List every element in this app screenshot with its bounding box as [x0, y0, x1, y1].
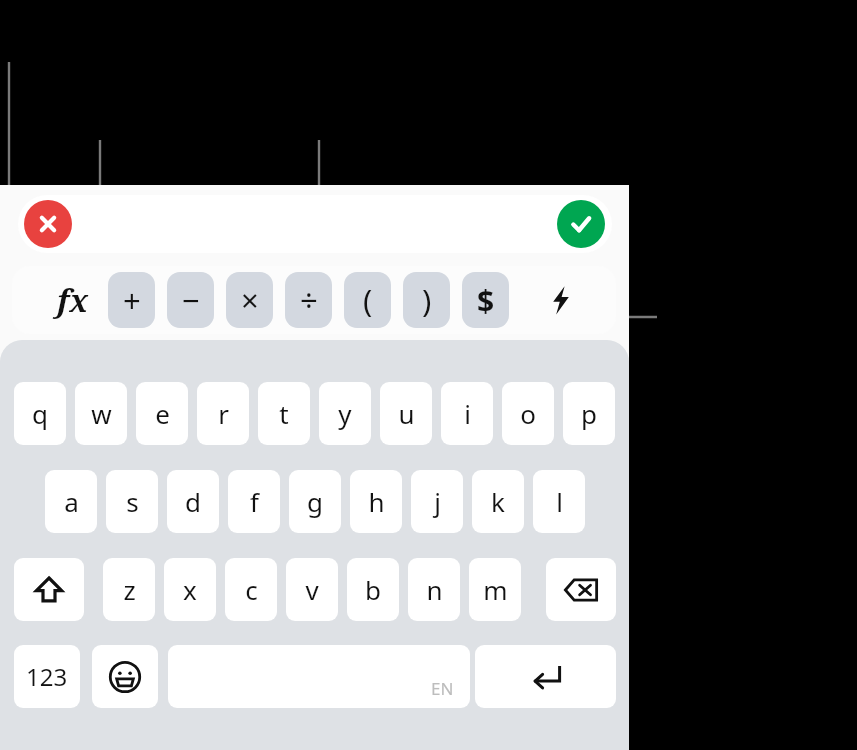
- button[interactable]: ): [403, 272, 450, 328]
- staticText: 123: [26, 660, 68, 693]
- button[interactable]: Space: [168, 645, 470, 708]
- staticText: b: [365, 572, 381, 607]
- staticText: p: [581, 396, 597, 431]
- button[interactable]: r: [197, 382, 249, 445]
- button[interactable]: x: [164, 558, 216, 621]
- button[interactable]: t: [258, 382, 310, 445]
- staticText: o: [520, 396, 536, 431]
- button[interactable]: +: [108, 272, 155, 328]
- button[interactable]: z: [103, 558, 155, 621]
- button[interactable]: u: [380, 382, 432, 445]
- staticText: d: [185, 484, 201, 519]
- button[interactable]: w: [75, 382, 127, 445]
- staticText: k: [491, 484, 505, 519]
- staticText: +: [123, 279, 141, 321]
- staticText: c: [245, 572, 258, 607]
- staticText: EN: [431, 677, 454, 700]
- staticText: f: [250, 484, 259, 519]
- button[interactable]: y: [319, 382, 371, 445]
- staticText: q: [32, 396, 48, 431]
- staticText: −: [182, 279, 200, 321]
- button[interactable]: a: [45, 470, 97, 533]
- staticText: ): [422, 279, 432, 321]
- staticText: y: [338, 396, 352, 431]
- button[interactable]: Accept: [557, 200, 605, 248]
- button[interactable]: (: [344, 272, 391, 328]
- button[interactable]: Emoji: [92, 645, 158, 708]
- staticText: n: [426, 572, 443, 607]
- button[interactable]: 123: [14, 645, 80, 708]
- button[interactable]: v: [286, 558, 338, 621]
- button[interactable]: Shift: [14, 558, 84, 621]
- button[interactable]: s: [106, 470, 158, 533]
- button[interactable]: l: [533, 470, 585, 533]
- button[interactable]: j: [411, 470, 463, 533]
- button[interactable]: q: [14, 382, 66, 445]
- staticText: a: [64, 484, 79, 519]
- button[interactable]: c: [225, 558, 277, 621]
- button[interactable]: o: [502, 382, 554, 445]
- staticText: j: [434, 484, 441, 519]
- staticText: ×: [241, 279, 259, 321]
- staticText: v: [305, 572, 319, 607]
- button[interactable]: Quick actions: [538, 277, 584, 323]
- button[interactable]: g: [289, 470, 341, 533]
- button[interactable]: m: [469, 558, 521, 621]
- button[interactable]: d: [167, 470, 219, 533]
- staticText: z: [123, 572, 136, 607]
- button[interactable]: b: [347, 558, 399, 621]
- button[interactable]: h: [350, 470, 402, 533]
- button[interactable]: Functions: [48, 275, 98, 325]
- staticText: m: [483, 572, 508, 607]
- button[interactable]: $: [462, 272, 509, 328]
- staticText: g: [307, 484, 323, 519]
- staticText: l: [556, 484, 563, 519]
- staticText: ÷: [300, 279, 318, 321]
- button[interactable]: i: [441, 382, 493, 445]
- button[interactable]: −: [167, 272, 214, 328]
- staticText: x: [183, 572, 197, 607]
- staticText: $: [477, 280, 495, 321]
- staticText: r: [218, 396, 229, 431]
- staticText: (: [363, 279, 373, 321]
- button[interactable]: Backspace: [546, 558, 616, 621]
- staticText: u: [398, 396, 415, 431]
- button[interactable]: n: [408, 558, 460, 621]
- staticText: s: [126, 484, 139, 519]
- staticText: fx: [57, 279, 89, 321]
- button[interactable]: ×: [226, 272, 273, 328]
- button[interactable]: Enter: [475, 645, 616, 708]
- button[interactable]: ÷: [285, 272, 332, 328]
- button[interactable]: f: [228, 470, 280, 533]
- button[interactable]: Cancel: [24, 200, 72, 248]
- staticText: t: [279, 396, 289, 431]
- staticText: i: [464, 396, 471, 431]
- staticText: e: [155, 396, 170, 431]
- staticText: w: [91, 396, 112, 431]
- button[interactable]: p: [563, 382, 615, 445]
- button[interactable]: e: [136, 382, 188, 445]
- button[interactable]: k: [472, 470, 524, 533]
- staticText: h: [368, 484, 385, 519]
